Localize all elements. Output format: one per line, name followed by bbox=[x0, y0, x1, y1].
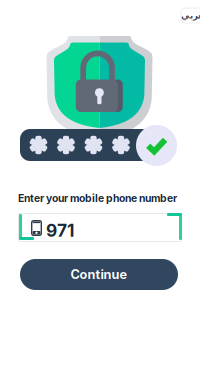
staticText: Enter your mobile phone number bbox=[18, 192, 177, 205]
staticText: عربي bbox=[180, 10, 200, 20]
button[interactable]: Continue bbox=[20, 259, 178, 290]
staticText: Continue bbox=[70, 267, 127, 282]
button[interactable]: عربي bbox=[181, 8, 200, 23]
staticText: 971 bbox=[46, 220, 74, 241]
